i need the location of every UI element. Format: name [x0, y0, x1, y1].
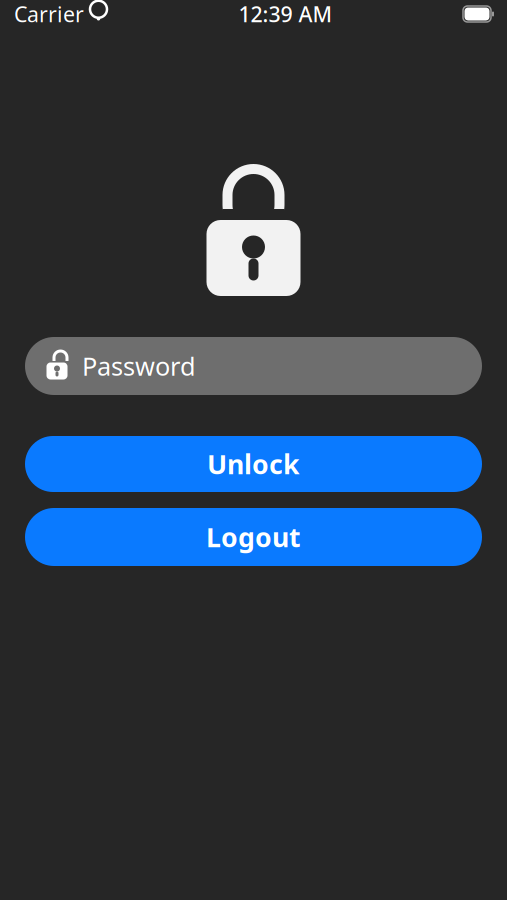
- staticText: Logout: [206, 519, 301, 555]
- staticText: Carrier: [14, 0, 84, 28]
- staticText: Password: [82, 349, 196, 383]
- button[interactable]: Unlock: [25, 436, 482, 492]
- button[interactable]: Logout: [25, 508, 482, 566]
- staticText: Unlock: [207, 446, 300, 482]
- staticText: 12:39 AM: [238, 0, 332, 28]
